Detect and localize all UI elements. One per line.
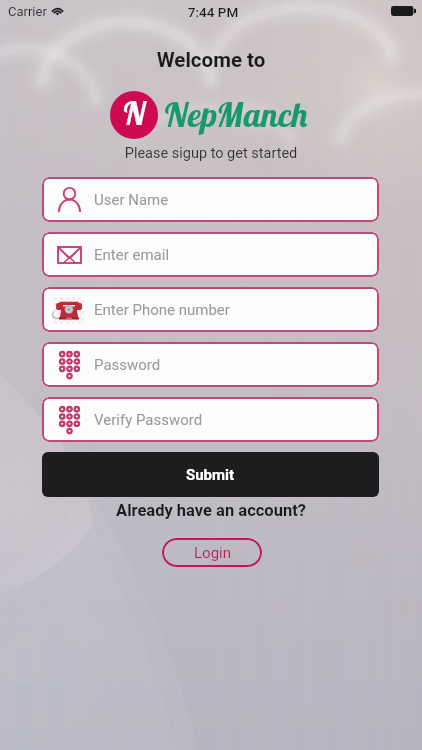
staticText: N [122,93,146,133]
staticText: Submit [186,466,235,484]
staticText: Enter Phone number [94,301,230,319]
staticText: NepManch [163,93,309,136]
button[interactable]: Login [162,538,262,567]
staticText: Carrier [8,4,47,19]
staticText: Please sigup to get started [0,145,422,162]
staticText: Enter email [94,246,170,264]
staticText: Already have an account? [0,501,422,520]
staticText: Password [94,356,161,374]
button[interactable]: Submit [42,452,379,497]
button[interactable]: Enter Phone number [42,287,379,332]
staticText: Login [194,544,231,562]
button[interactable]: Password [42,342,379,387]
staticText: User Name [94,191,169,209]
staticText: Verify Password [94,411,203,429]
button[interactable]: Enter email [42,232,379,277]
staticText: 7:44 PM [2,4,422,20]
staticText: Welcome to [0,48,422,72]
button[interactable]: Verify Password [42,397,379,442]
button[interactable]: User Name [42,177,379,222]
